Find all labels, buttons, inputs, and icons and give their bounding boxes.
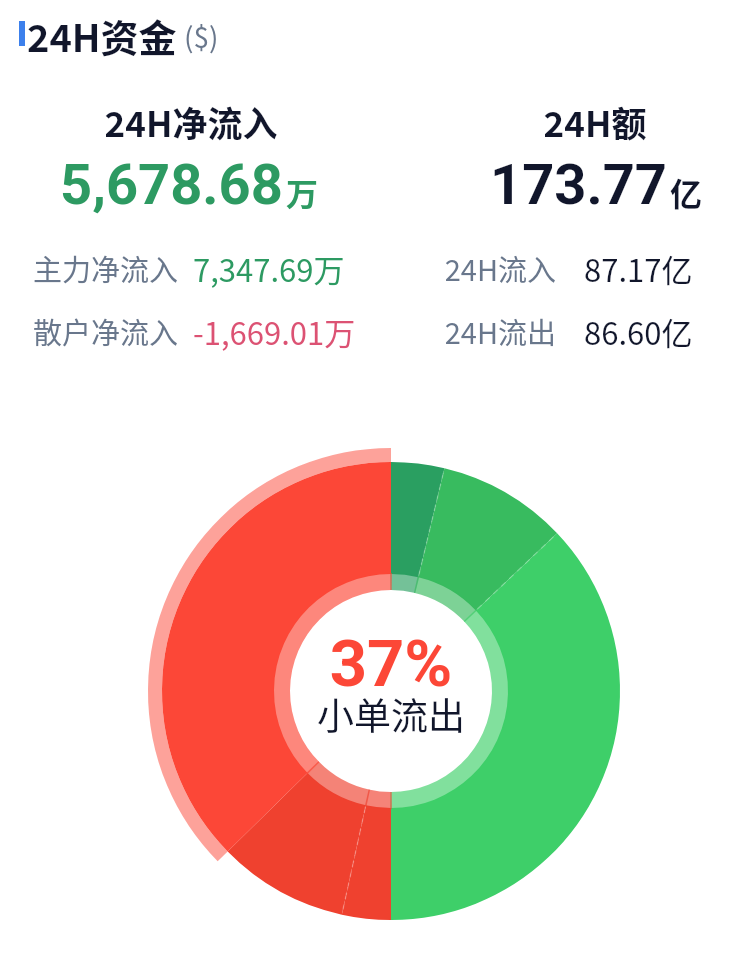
staticText: 7,347.69万	[193, 246, 345, 291]
staticText: 亿	[670, 169, 703, 215]
staticText: -1,669.01万	[193, 309, 356, 354]
staticText: 5,678.68	[60, 152, 283, 218]
staticText: 37%	[274, 626, 508, 702]
staticText: 主力净流入	[0, 247, 178, 289]
staticText: 24H额	[220, 96, 750, 147]
staticText: 24H资金	[27, 8, 177, 58]
button[interactable]: 24H资金	[12, 8, 219, 58]
button[interactable]: 资金分布饼图	[274, 574, 508, 808]
staticText: ($)	[184, 16, 219, 57]
button[interactable]	[378, 88, 742, 238]
staticText: 24H流入	[256, 247, 556, 289]
staticText: 24H净流入	[0, 96, 566, 147]
staticText: 86.60亿	[584, 309, 693, 354]
staticText: 24H流出	[256, 310, 556, 352]
staticText: 87.17亿	[584, 246, 693, 291]
staticText: 173.77	[490, 152, 667, 218]
staticText: 万	[286, 169, 319, 215]
button[interactable]	[8, 88, 374, 238]
staticText: 小单流出	[274, 687, 508, 741]
staticText: 散户净流入	[0, 310, 178, 352]
